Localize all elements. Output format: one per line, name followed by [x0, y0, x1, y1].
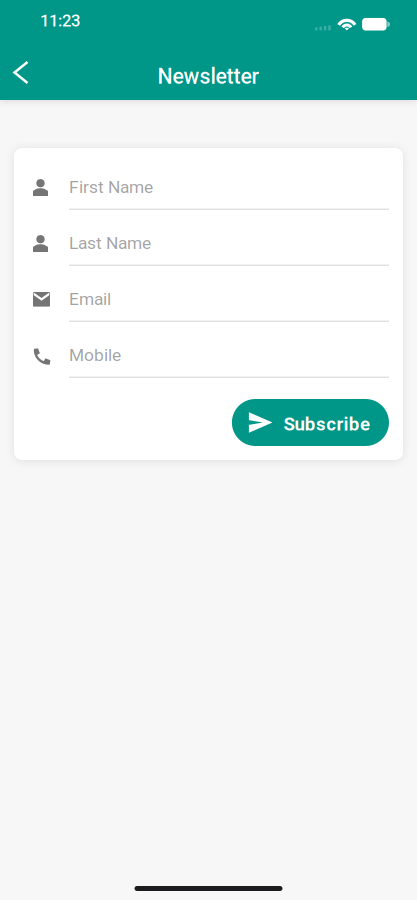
staticText: Mobile — [69, 345, 121, 365]
button[interactable]: Back — [0, 45, 42, 100]
staticText: Last Name — [69, 233, 151, 253]
staticText: First Name — [69, 177, 153, 197]
button[interactable]: Subscribe — [232, 399, 389, 446]
staticText: Subscribe — [283, 413, 370, 435]
staticText: Email — [69, 289, 111, 309]
staticText: Newsletter — [157, 64, 259, 89]
staticText: 11:23 — [40, 11, 80, 30]
